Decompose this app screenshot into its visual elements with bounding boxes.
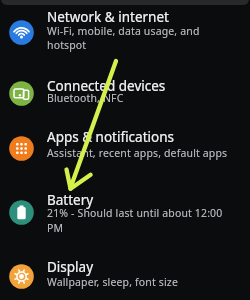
staticText: Display	[47, 258, 94, 276]
staticText: hotspot	[47, 38, 87, 52]
button[interactable]: Network & internet	[0, 0, 250, 58]
button[interactable]: Display	[0, 250, 250, 300]
staticText: Connected devices	[47, 77, 166, 95]
button[interactable]: Apps & notifications	[0, 122, 250, 170]
staticText: Wi-Fi, mobile, data usage, and	[47, 24, 200, 38]
button[interactable]: Battery	[0, 186, 250, 244]
staticText: Battery	[47, 191, 94, 209]
staticText: Bluetooth, NFC	[47, 91, 124, 105]
staticText: Network & internet	[47, 8, 169, 26]
staticText: Apps & notifications	[47, 128, 174, 146]
staticText: PM	[47, 221, 64, 235]
staticText: Assistant, recent apps, default apps	[47, 146, 228, 160]
staticText: Wallpaper, sleep, font size	[47, 275, 178, 289]
button[interactable]: Connected devices	[0, 70, 250, 114]
staticText: 21% - Should last until about 12:00	[47, 206, 223, 220]
